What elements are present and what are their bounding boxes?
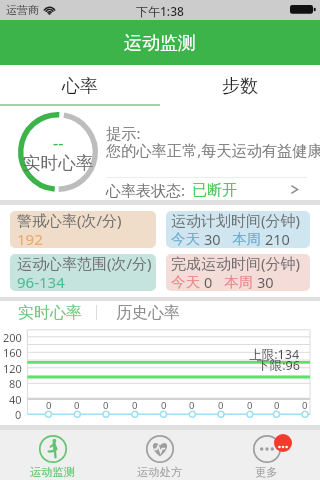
staticText: 下限:96 bbox=[257, 357, 300, 371]
staticText: 96-134 bbox=[17, 272, 65, 291]
staticText: 0 bbox=[132, 399, 138, 412]
staticText: 已断开 bbox=[192, 181, 237, 200]
button[interactable]: 历史心率 bbox=[116, 302, 180, 324]
staticText: 0 bbox=[302, 399, 308, 412]
staticText: 本周 bbox=[224, 273, 253, 291]
button[interactable]: 心率 bbox=[0, 65, 160, 106]
staticText: 心率 bbox=[62, 75, 98, 98]
button[interactable]: 警戒心率(次/分) bbox=[10, 211, 156, 248]
staticText: 运动处方 bbox=[137, 465, 183, 479]
button[interactable]: 更多 bbox=[213, 430, 320, 480]
staticText: 0 bbox=[274, 399, 280, 412]
staticText: 120 bbox=[3, 361, 22, 376]
staticText: 200 bbox=[3, 330, 22, 345]
staticText: 本周 bbox=[232, 230, 261, 248]
staticText: 80 bbox=[9, 376, 22, 391]
staticText: 运动监测 bbox=[30, 465, 76, 479]
staticText: 0 bbox=[189, 399, 195, 412]
staticText: 完成运动时间(分钟) bbox=[171, 254, 301, 273]
staticText: 您的心率正常,每天运动有益健康 bbox=[106, 140, 320, 161]
staticText: 今天 bbox=[171, 230, 200, 248]
staticText: 实时心率 bbox=[23, 152, 94, 174]
staticText: -- bbox=[53, 132, 64, 150]
staticText: 160 bbox=[3, 345, 22, 360]
button[interactable]: 完成运动时间(分钟) bbox=[166, 254, 310, 291]
button[interactable]: 运动计划时间(分钟) bbox=[166, 211, 310, 248]
staticText: 40 bbox=[9, 392, 22, 407]
button[interactable]: 运动监测 bbox=[0, 430, 106, 480]
staticText: 210 bbox=[265, 229, 290, 248]
staticText: 30 bbox=[257, 272, 274, 291]
staticText: 历史心率 bbox=[116, 303, 180, 323]
staticText: 更多 bbox=[255, 465, 278, 479]
other: 心率表状态 bbox=[290, 185, 299, 194]
staticText: 实时心率 bbox=[18, 303, 82, 323]
staticText: 上限:134 bbox=[249, 346, 300, 360]
button[interactable]: 实时心率 bbox=[18, 302, 82, 324]
staticText: 运营商 bbox=[6, 3, 39, 17]
button[interactable]: 步数 bbox=[160, 65, 320, 106]
staticText: 提示: bbox=[106, 123, 141, 144]
staticText: 步数 bbox=[222, 75, 258, 98]
staticText: 192 bbox=[17, 229, 43, 248]
staticText: 今天 bbox=[171, 273, 200, 291]
staticText: 0 bbox=[15, 407, 22, 422]
button[interactable]: 心率表状态: bbox=[106, 180, 307, 200]
button[interactable]: 运动心率范围(次/分) bbox=[10, 254, 156, 291]
staticText: 运动计划时间(分钟) bbox=[171, 211, 301, 230]
staticText: 运动监测 bbox=[124, 32, 196, 55]
staticText: 0 bbox=[247, 399, 253, 412]
staticText: 0 bbox=[161, 399, 167, 412]
staticText: 0 bbox=[218, 399, 224, 412]
staticText: 心率表状态: bbox=[106, 180, 186, 200]
staticText: 警戒心率(次/分) bbox=[17, 211, 122, 230]
staticText: 30 bbox=[204, 229, 221, 248]
staticText: 运动心率范围(次/分) bbox=[17, 254, 152, 273]
staticText: 0 bbox=[74, 399, 80, 412]
staticText: 0 bbox=[204, 272, 213, 291]
staticText: 0 bbox=[46, 399, 52, 412]
staticText: 下午1:38 bbox=[136, 3, 184, 19]
staticText: 0 bbox=[103, 399, 109, 412]
button[interactable]: 运动处方 bbox=[106, 430, 213, 480]
